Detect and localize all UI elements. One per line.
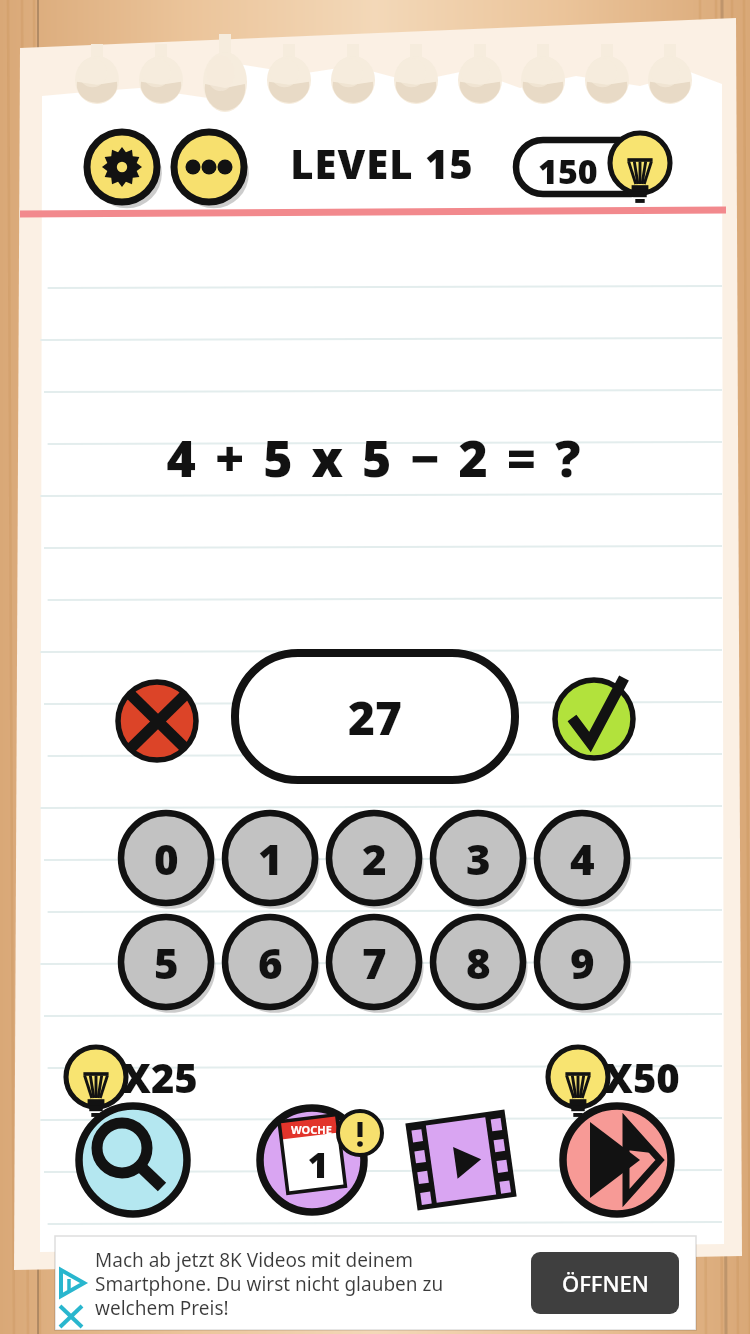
staticText: 6 — [258, 934, 283, 991]
button[interactable]: 9 — [537, 917, 627, 1007]
button[interactable]: 4 — [537, 813, 627, 903]
button[interactable]: Watch video — [409, 1112, 513, 1216]
staticText: ÖFFNEN — [562, 1268, 649, 1298]
button[interactable]: 27 — [235, 653, 515, 780]
button[interactable]: 3 — [433, 813, 523, 903]
staticText: 1 — [298, 1140, 338, 1189]
staticText: 8 — [466, 934, 491, 991]
staticText: Mach ab jetzt 8K Videos mit deinem Smart… — [95, 1247, 515, 1320]
button[interactable]: ÖFFNEN — [531, 1252, 679, 1314]
staticText: 4 — [570, 830, 595, 887]
staticText: 1 — [258, 830, 283, 887]
button[interactable]: Daily reward — [260, 1108, 364, 1212]
button[interactable]: 1 — [225, 813, 315, 903]
button[interactable]: Submit answer — [555, 680, 633, 758]
button[interactable]: 0 — [121, 813, 211, 903]
button[interactable]: 2 — [329, 813, 419, 903]
staticText: 9 — [570, 934, 595, 991]
staticText: LEVEL 15 — [282, 136, 482, 190]
button[interactable]: Hint — [79, 1106, 187, 1214]
button[interactable]: Settings — [87, 132, 157, 202]
staticText: 2 — [362, 830, 387, 887]
button[interactable]: 5 — [121, 917, 211, 1007]
staticText: 3 — [466, 830, 491, 887]
button[interactable]: Hints: 150 — [510, 136, 670, 198]
staticText: 0 — [154, 830, 179, 887]
button[interactable]: Mach ab jetzt 8K Videos mit deinem Smart… — [55, 1236, 696, 1330]
staticText: 150 — [538, 148, 598, 194]
staticText: 27 — [235, 686, 515, 749]
staticText: WOCHE — [291, 1122, 332, 1137]
button[interactable]: Skip level — [563, 1106, 671, 1214]
button[interactable]: 7 — [329, 917, 419, 1007]
staticText: X50 — [604, 1050, 680, 1104]
staticText: X25 — [122, 1050, 198, 1104]
button[interactable]: Close ad — [52, 1298, 90, 1334]
button[interactable]: Clear — [118, 682, 196, 760]
staticText: 5 — [154, 934, 179, 991]
staticText: 7 — [362, 934, 387, 991]
button[interactable]: 8 — [433, 917, 523, 1007]
button[interactable]: 6 — [225, 917, 315, 1007]
staticText: 4 + 5 x 5 − 2 = ? — [0, 424, 750, 492]
button[interactable]: More options — [174, 132, 244, 202]
